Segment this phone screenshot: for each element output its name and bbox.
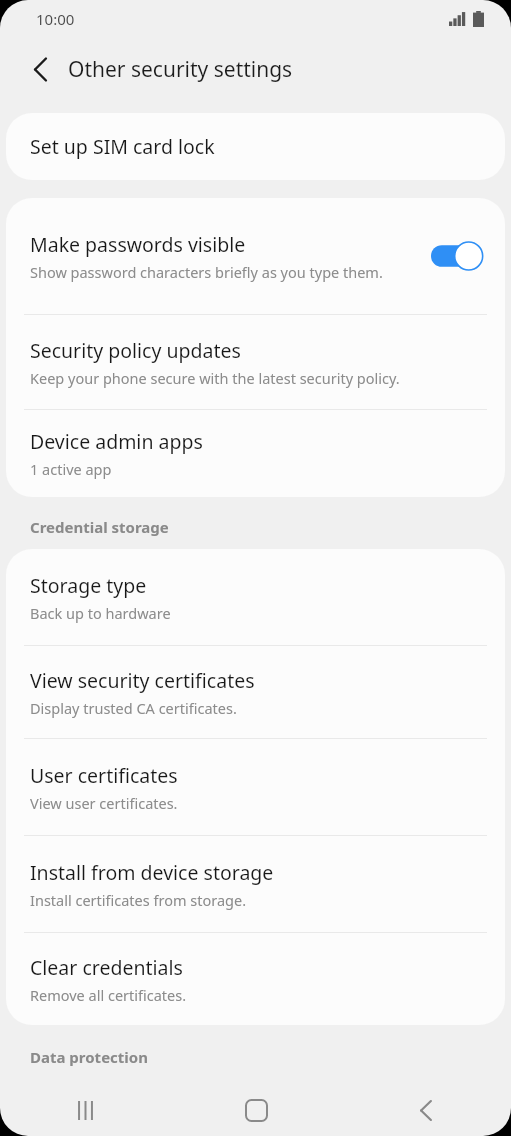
staticText: Device admin apps [30,428,203,455]
button[interactable]: Back [341,1084,511,1136]
staticText: 1 active app [30,459,112,479]
staticText: 10:00 [36,9,75,29]
staticText: Set up SIM card lock [30,133,215,160]
staticText: Install from device storage [30,859,274,886]
staticText: Display trusted CA certificates. [30,698,237,718]
staticText: Install certificates from storage. [30,890,247,910]
button[interactable]: Make passwords visible [431,241,483,271]
staticText: Storage type [30,572,147,599]
button[interactable]: Recent apps [0,1084,171,1136]
staticText: View security certificates [30,667,255,694]
button[interactable]: Device admin apps [6,410,505,497]
staticText: Show password characters briefly as you … [30,262,383,282]
button[interactable]: Make passwords visible [6,198,505,314]
button[interactable]: Home [171,1084,341,1136]
staticText: Clear credentials [30,954,183,981]
staticText: User certificates [30,762,178,789]
button[interactable]: Set up SIM card lock [6,113,505,180]
staticText: Data protection [30,1047,511,1067]
staticText: Credential storage [30,517,511,537]
staticText: Remove all certificates. [30,985,187,1005]
staticText: Keep your phone secure with the latest s… [30,368,400,388]
staticText: Make passwords visible [30,231,246,258]
staticText: View user certificates. [30,793,178,813]
button[interactable]: View security certificates [6,646,505,738]
button[interactable]: Security policy updates [6,315,505,409]
button[interactable]: Install from device storage [6,836,505,932]
button[interactable]: Clear credentials [6,933,505,1025]
staticText: Back up to hardware [30,603,171,623]
button[interactable]: Storage type [6,549,505,645]
staticText: Security policy updates [30,337,241,364]
button[interactable]: Back [17,46,63,92]
staticText: Other security settings [68,55,293,84]
button[interactable]: User certificates [6,739,505,835]
